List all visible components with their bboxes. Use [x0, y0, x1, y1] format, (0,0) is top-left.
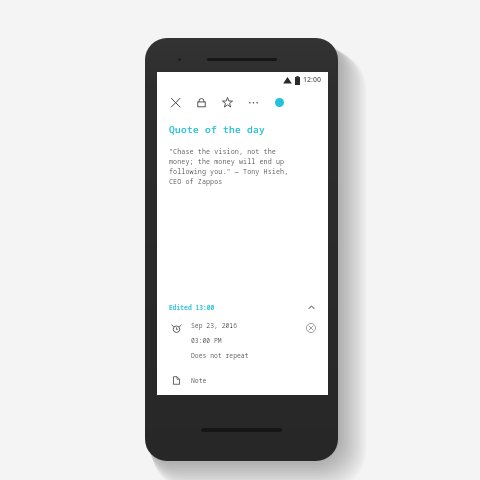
staticText: Edited 13:00 — [169, 303, 215, 312]
staticText: Does not repeat — [191, 351, 249, 360]
staticText: 12:00 — [303, 75, 321, 85]
button[interactable]: More options — [244, 93, 262, 111]
staticText: 03:00 PM — [191, 336, 222, 345]
staticText: Note — [191, 376, 207, 385]
button[interactable]: Close — [166, 93, 184, 111]
button[interactable]: Sep 23, 2016 — [157, 321, 328, 360]
staticText: Quote of the day — [169, 123, 266, 136]
other: Collapse — [305, 301, 318, 314]
button[interactable]: Colour — [270, 93, 288, 111]
button[interactable]: Remove reminder — [304, 321, 318, 335]
staticText: Sep 23, 2016 — [191, 321, 238, 330]
button[interactable]: Star — [218, 93, 236, 111]
button[interactable]: Note — [157, 373, 328, 387]
button[interactable]: Lock — [192, 93, 210, 111]
button[interactable]: Edited 13:00 — [157, 299, 328, 315]
staticText: "Chase the vision, not the money; the mo… — [169, 147, 289, 186]
